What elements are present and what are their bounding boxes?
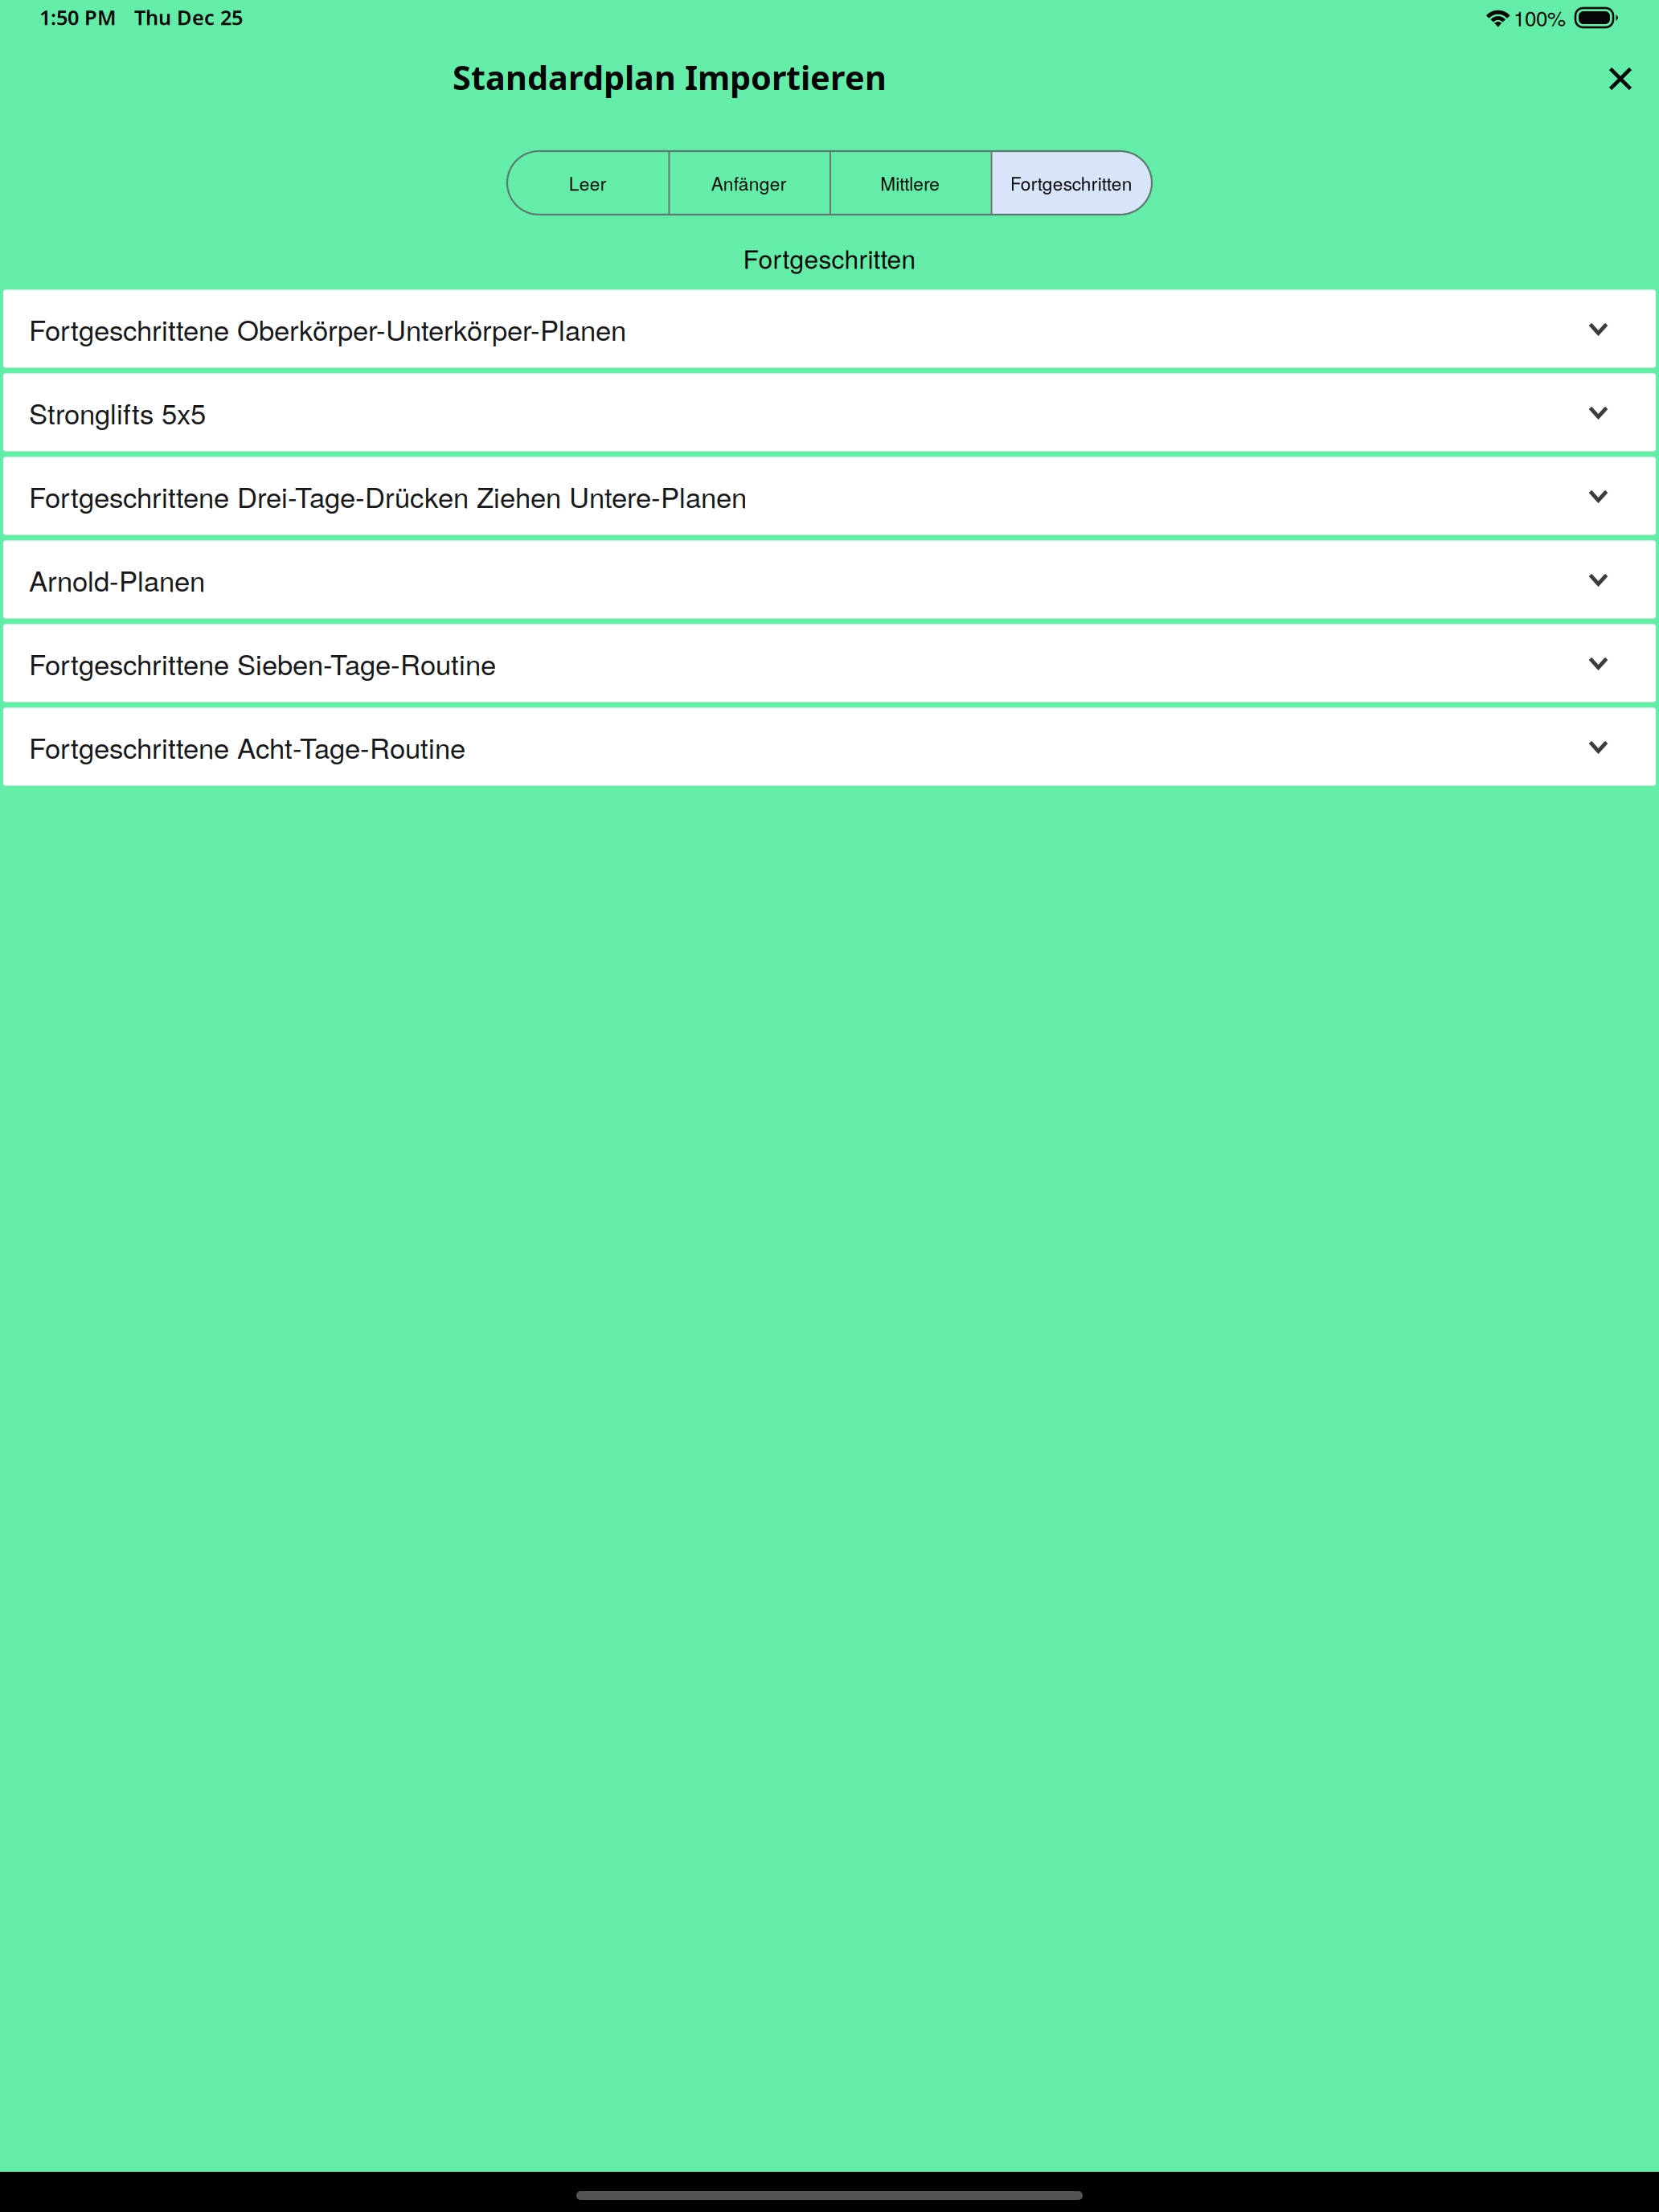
staticText: Mittlere bbox=[880, 170, 940, 196]
staticText: Fortgeschrittene Oberkörper-Unterkörper-… bbox=[29, 309, 626, 349]
staticText: Anfänger bbox=[711, 170, 787, 196]
staticText: Leer bbox=[569, 170, 607, 196]
button[interactable]: Schließen bbox=[1583, 39, 1657, 118]
button[interactable]: Mittlere bbox=[829, 151, 991, 215]
staticText: 1:50 PM bbox=[39, 3, 117, 31]
button[interactable]: Fortgeschritten bbox=[991, 151, 1152, 215]
button[interactable]: Arnold-Planen bbox=[3, 540, 1656, 618]
staticText: Arnold-Planen bbox=[29, 560, 205, 599]
staticText: Fortgeschrittene Acht-Tage-Routine bbox=[29, 727, 465, 767]
staticText: Fortgeschrittene Sieben-Tage-Routine bbox=[29, 643, 496, 683]
staticText: Fortgeschrittene Drei-Tage-Drücken Ziehe… bbox=[29, 476, 747, 516]
staticText: 100% bbox=[1514, 2, 1566, 32]
button[interactable]: Fortgeschrittene Oberkörper-Unterkörper-… bbox=[3, 290, 1656, 368]
button[interactable]: Leer bbox=[507, 151, 668, 215]
button[interactable]: Stronglifts 5x5 bbox=[3, 373, 1656, 451]
staticText: Fortgeschritten bbox=[743, 240, 916, 276]
button[interactable]: Fortgeschrittene Sieben-Tage-Routine bbox=[3, 624, 1656, 702]
button[interactable]: Anfänger bbox=[668, 151, 829, 215]
staticText: Standardplan Importieren bbox=[453, 55, 887, 100]
button[interactable]: Fortgeschrittene Acht-Tage-Routine bbox=[3, 708, 1656, 786]
staticText: Fortgeschritten bbox=[1010, 170, 1132, 196]
button[interactable]: Fortgeschrittene Drei-Tage-Drücken Ziehe… bbox=[3, 457, 1656, 535]
staticText: Stronglifts 5x5 bbox=[29, 392, 206, 432]
staticText: Thu Dec 25 bbox=[134, 3, 243, 31]
